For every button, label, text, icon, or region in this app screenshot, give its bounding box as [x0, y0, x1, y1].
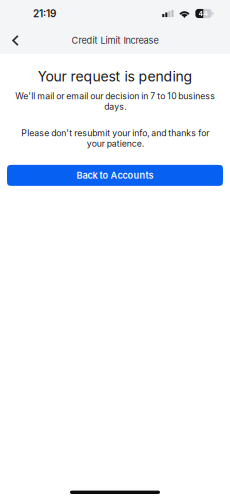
staticText: Back to Accounts — [76, 170, 153, 181]
staticText: Please don't resubmit your info, and tha… — [21, 128, 209, 149]
staticText: Credit Limit Increase — [71, 35, 158, 46]
staticText: Your request is pending — [37, 68, 192, 85]
staticText: 21:19 — [33, 7, 56, 20]
staticText: 44 — [198, 9, 208, 18]
button[interactable]: Back — [0, 27, 31, 54]
staticText: We'll mail or email our decision in 7 to… — [15, 91, 215, 112]
button[interactable]: Back to Accounts — [7, 165, 223, 186]
